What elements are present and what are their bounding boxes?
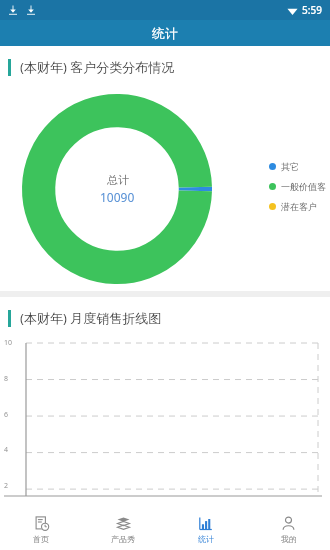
staticText: 2 [4, 481, 9, 491]
staticText: 潜在客户 [281, 201, 317, 212]
staticText: 8 [4, 374, 9, 384]
staticText: 5:59 [302, 3, 322, 17]
staticText: 一般价值客 [281, 181, 326, 192]
button[interactable]: 统计 [164, 510, 247, 550]
staticText: 其它 [281, 161, 299, 172]
staticText: 10090 [100, 189, 135, 205]
staticText: 4 [4, 445, 9, 455]
staticText: 总计 [107, 173, 129, 187]
staticText: 10 [4, 338, 13, 348]
button[interactable]: 产品秀 [82, 510, 164, 550]
staticText: 我的 [281, 534, 297, 544]
staticText: (本财年) 客户分类分布情况 [20, 58, 175, 76]
staticText: 6 [4, 410, 9, 420]
button[interactable]: 我的 [247, 510, 330, 550]
button[interactable]: 首页 [0, 510, 82, 550]
staticText: 产品秀 [111, 534, 135, 544]
staticText: (本财年) 月度销售折线图 [20, 309, 162, 327]
staticText: 统计 [198, 534, 214, 544]
staticText: 首页 [33, 534, 49, 544]
staticText: 统计 [152, 25, 178, 41]
